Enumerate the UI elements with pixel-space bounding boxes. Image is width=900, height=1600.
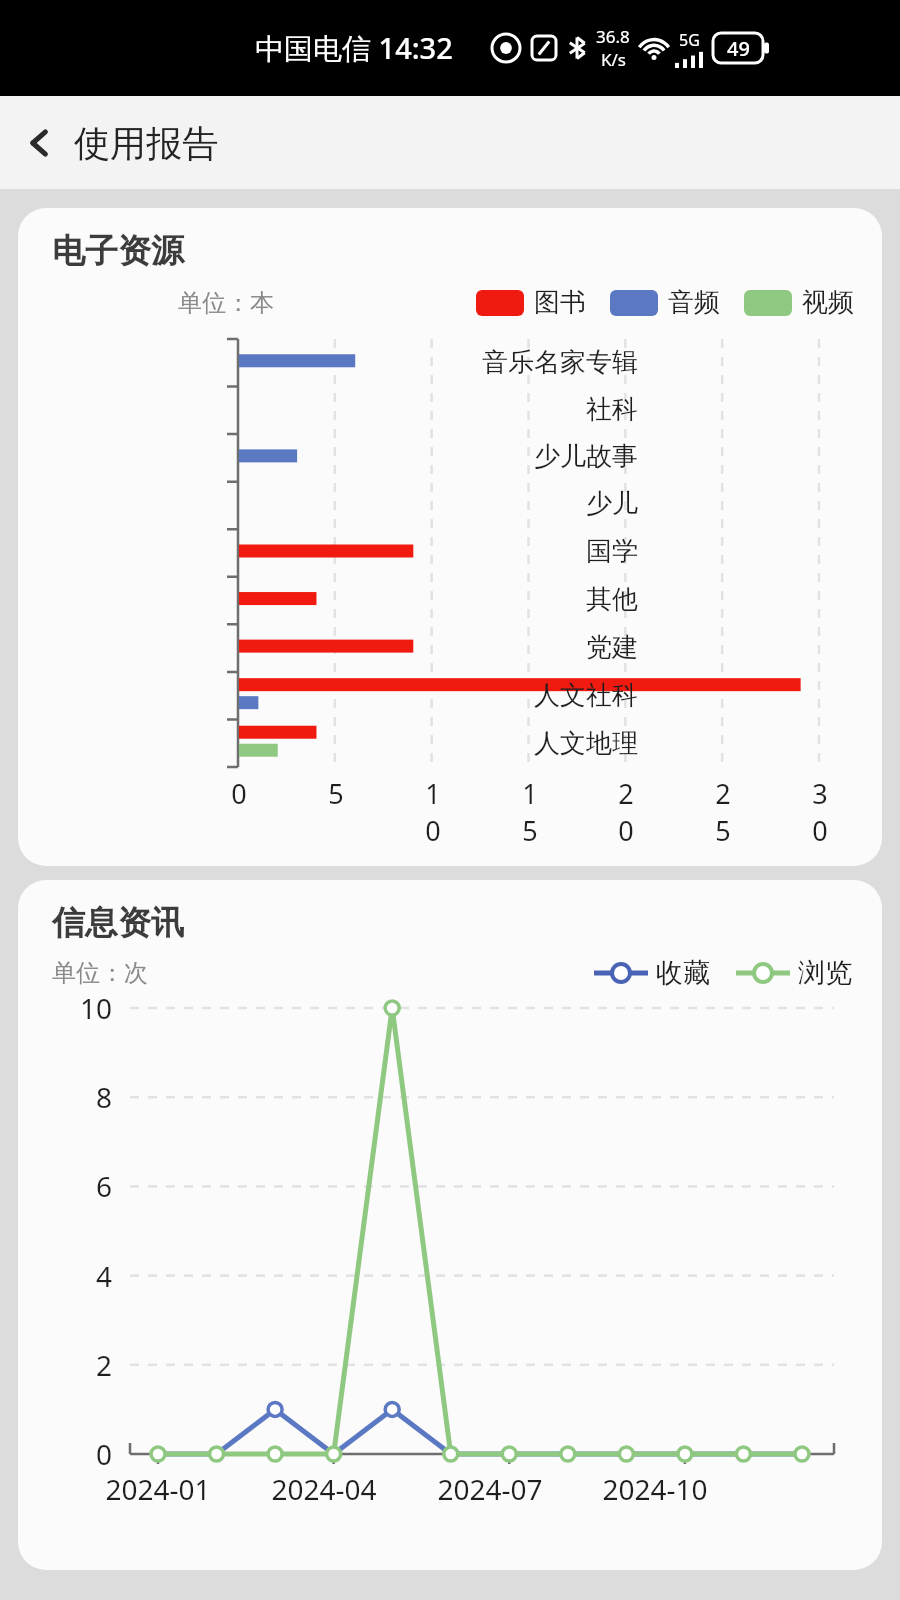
staticText: K/s [601,48,626,71]
staticText: 图书 [534,286,586,319]
staticText: 2024-01 [78,1470,238,1508]
staticText: 音乐名家专辑 [408,346,638,379]
staticText: 收藏 [656,956,710,990]
button[interactable]: Back [14,117,66,169]
staticText: 音频 [668,286,720,319]
staticText: 中国电信 14:32 [255,28,453,68]
staticText: 单位：本 [178,288,274,318]
staticText: 0 [224,775,254,812]
staticText: 电子资源 [52,230,184,272]
staticText: 党建 [408,631,638,664]
staticText: 2024-04 [244,1470,404,1508]
staticText: 人文社科 [408,679,638,712]
staticText: 视频 [802,286,854,319]
staticText: 5 [321,775,351,812]
staticText: 36.8 [596,25,630,48]
staticText: 2024-07 [410,1470,570,1508]
staticText: 25 [708,775,738,849]
staticText: 使用报告 [74,121,218,166]
staticText: 8 [52,1078,112,1116]
staticText: 其他 [408,583,638,616]
staticText: 单位：次 [52,958,148,988]
staticText: 少儿故事 [408,440,638,473]
staticText: 信息资讯 [52,902,184,944]
staticText: 国学 [408,535,638,568]
staticText: 20 [611,775,641,849]
staticText: 人文地理 [408,727,638,760]
staticText: 5G [679,29,700,51]
staticText: 2024-10 [575,1470,735,1508]
staticText: 15 [515,775,545,849]
staticText: 6 [52,1167,112,1205]
staticText: 10 [52,989,112,1027]
staticText: 30 [805,775,835,849]
staticText: 少儿 [408,487,638,520]
staticText: 社科 [408,393,638,426]
button[interactable]: 电子资源 [18,208,882,866]
staticText: 浏览 [798,956,852,990]
staticText: 49 [727,35,750,62]
button[interactable]: 信息资讯 [18,880,882,1570]
staticText: 2 [52,1346,112,1384]
staticText: 0 [52,1435,112,1473]
staticText: 4 [52,1257,112,1295]
staticText: 10 [418,775,448,849]
